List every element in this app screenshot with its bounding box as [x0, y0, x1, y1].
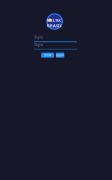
button[interactable]: Digite: [34, 43, 77, 52]
staticText: Digite: [35, 43, 44, 47]
staticText: BRASIL: [47, 23, 62, 28]
staticText: Entrar: [44, 53, 51, 57]
button[interactable]: Entrar: [41, 53, 54, 58]
staticText: MILTEC: [47, 17, 62, 23]
button[interactable]: Login: [56, 53, 64, 58]
staticText: Digite: [35, 36, 44, 39]
button[interactable]: Digite: [34, 36, 77, 44]
staticText: Login: [56, 53, 64, 57]
